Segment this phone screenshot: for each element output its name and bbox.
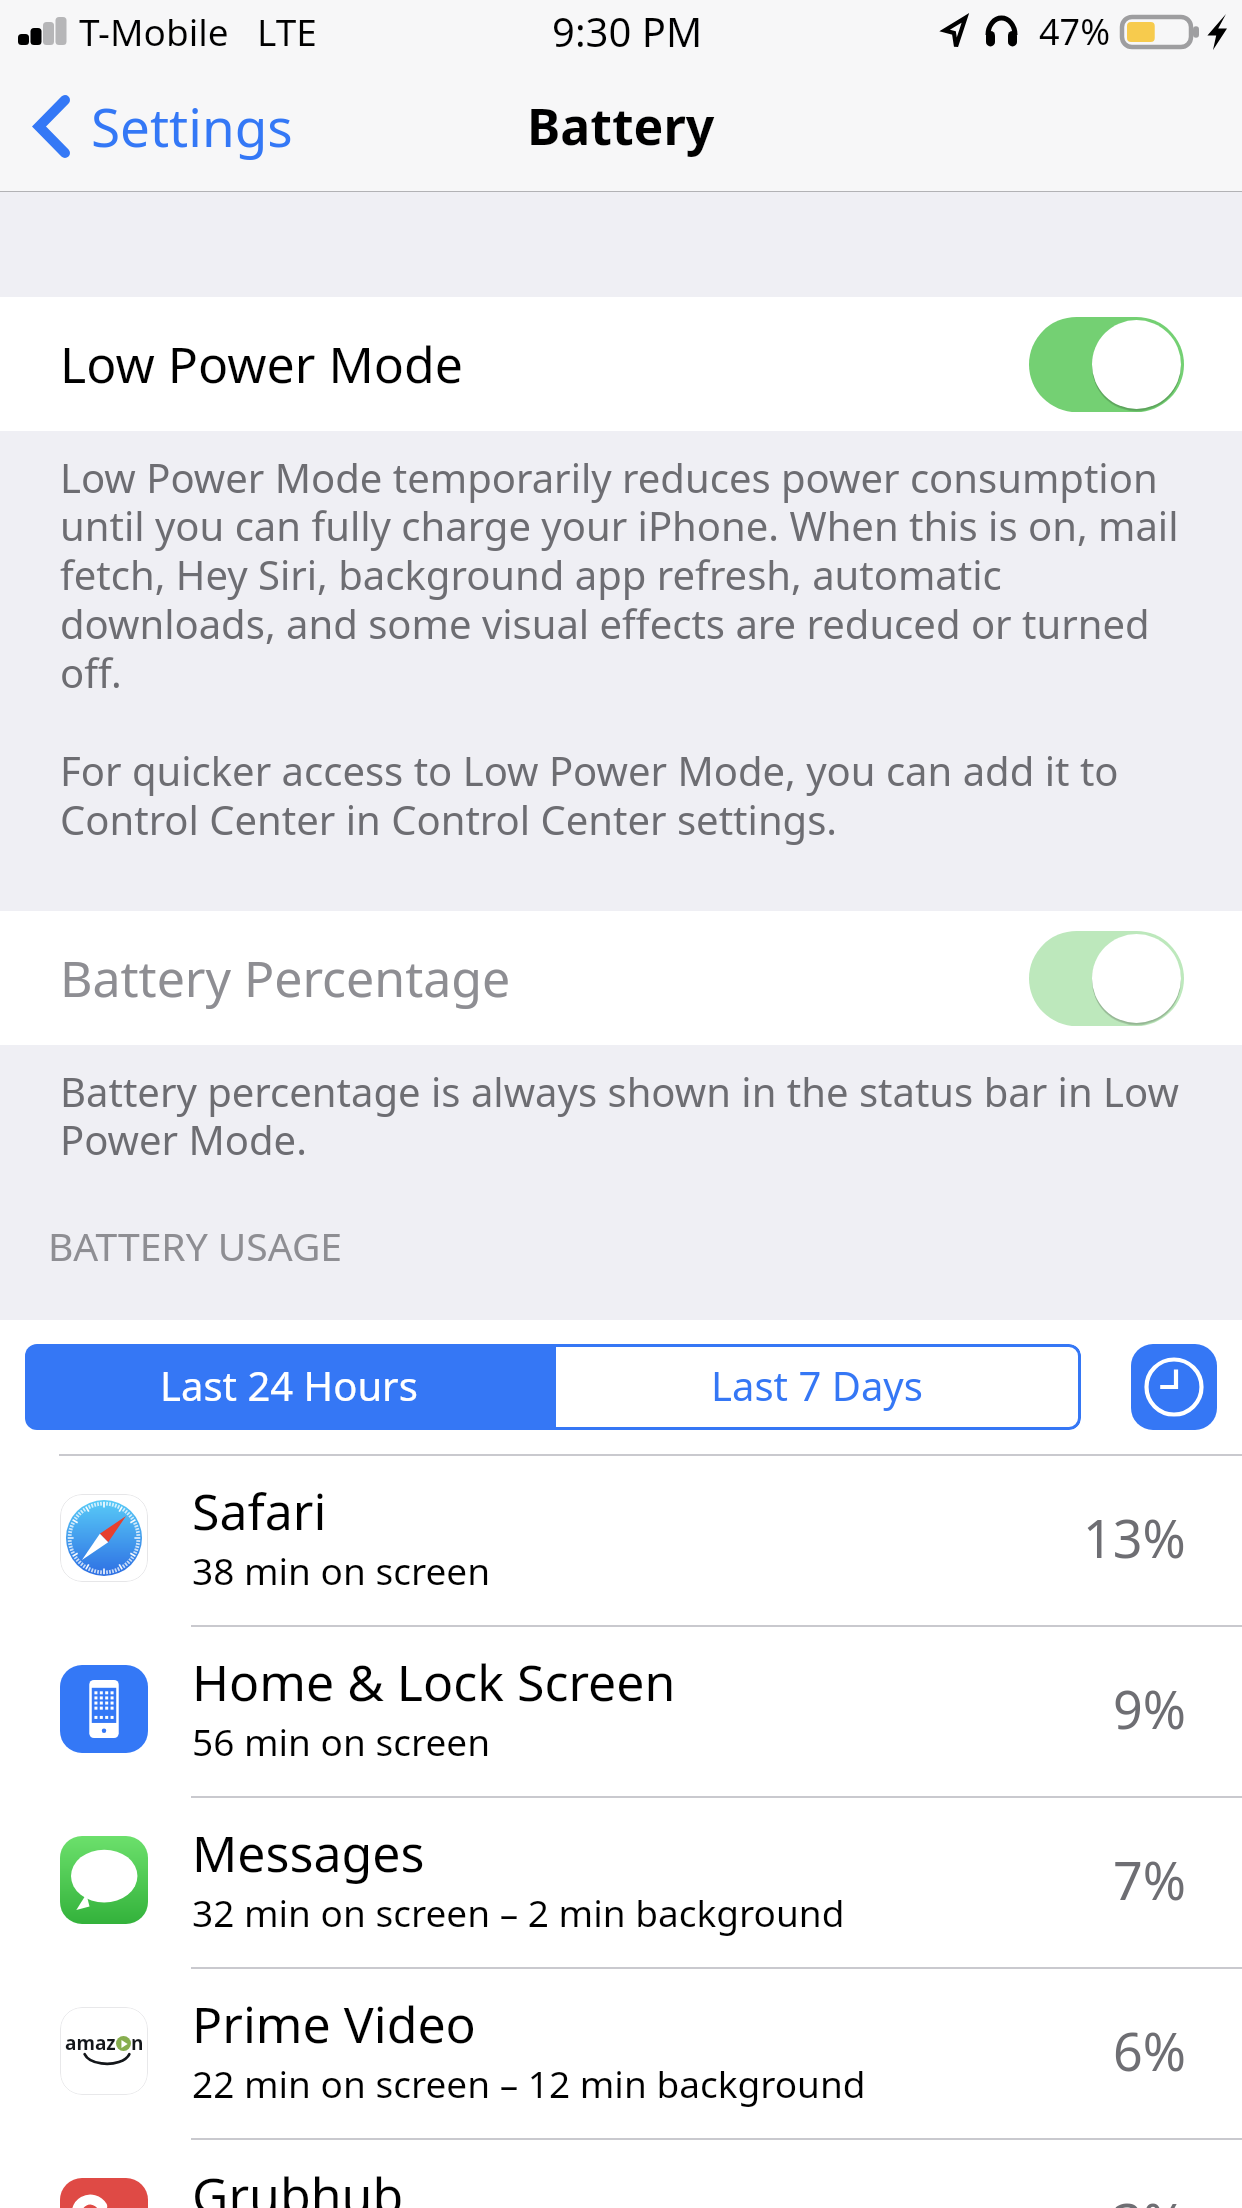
staticText: T-Mobile [79,6,229,56]
staticText: Safari [192,1477,327,1545]
staticText: Messages [192,1819,425,1887]
staticText: 56 min on screen [192,1716,491,1766]
button[interactable]: Low Power Mode [0,297,1242,431]
staticText: 7% [1113,1844,1186,1915]
button[interactable]: Home & Lock Screen [0,1625,1242,1796]
staticText: 6% [1113,2015,1186,2086]
button[interactable]: Safari [0,1454,1242,1625]
staticText: Home & Lock Screen [192,1648,676,1716]
staticText: BATTERY USAGE [48,1219,342,1272]
staticText: 22 min on screen – 12 min background [192,2058,866,2108]
button[interactable]: Last 7 Days [553,1344,1081,1430]
staticText: Battery Percentage [60,944,511,1012]
staticText: Prime Video [192,1990,476,2058]
staticText: 9:30 PM [552,4,703,58]
staticText: 3% [1113,2186,1186,2208]
staticText: Battery percentage is always shown in th… [60,1064,1179,1167]
staticText: LTE [257,6,317,56]
button[interactable]: Grubhub [0,2138,1242,2208]
button[interactable]: Settings [0,76,313,176]
staticText: n [131,2030,144,2056]
staticText: Settings [91,90,293,162]
staticText: Last 24 Hours [160,1358,418,1412]
button[interactable]: Battery Percentage [0,911,1242,1045]
staticText: 32 min on screen – 2 min background [192,1887,845,1937]
button[interactable]: Messages [0,1796,1242,1967]
button[interactable]: Show battery usage by hour [1131,1344,1217,1430]
staticText: 13% [1083,1502,1186,1573]
staticText: Grubhub [192,2161,404,2208]
button[interactable]: Last 24 Hours [25,1344,553,1430]
staticText: Last 7 Days [711,1358,923,1412]
staticText: 38 min on screen [192,1545,491,1595]
staticText: Low Power Mode [60,330,463,398]
staticText: amaz [65,2030,116,2056]
staticText: 47% [1039,7,1111,56]
staticText: Battery [527,92,715,160]
button[interactable]: amaz [0,1967,1242,2138]
staticText: 9% [1113,1673,1186,1744]
staticText: Low Power Mode temporarily reduces power… [60,450,1179,847]
